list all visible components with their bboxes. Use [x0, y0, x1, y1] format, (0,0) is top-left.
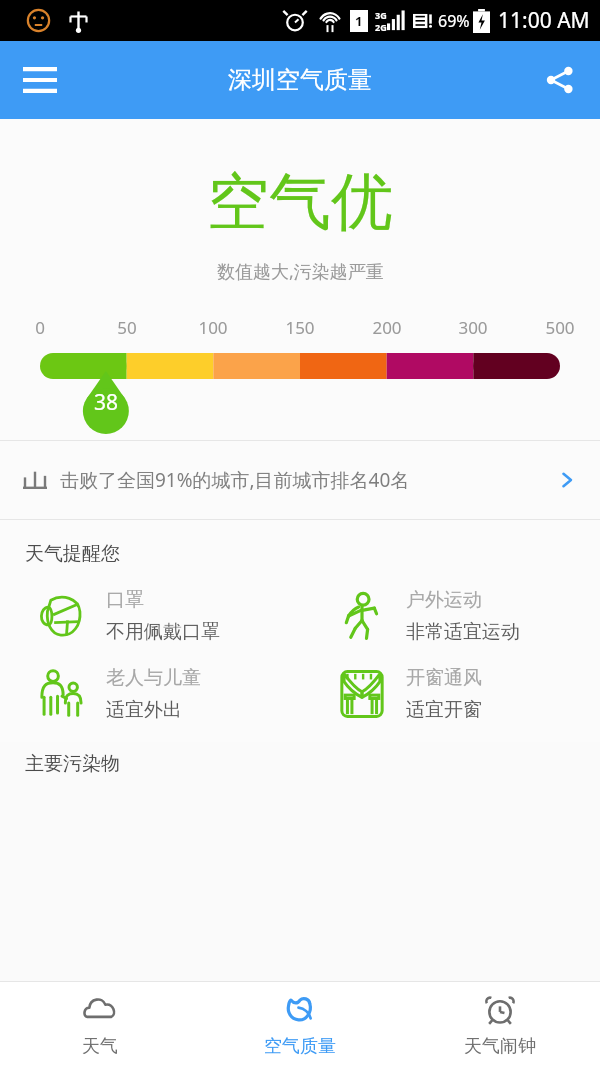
staticText: 数值越大,污染越严重 — [217, 259, 384, 284]
button[interactable]: Menu — [8, 48, 72, 112]
staticText: 主要污染物 — [25, 752, 120, 776]
staticText: 击败了全国91%的城市,目前城市排名40名 — [60, 467, 556, 493]
staticText: 50 — [105, 316, 149, 339]
staticText: 500 — [538, 316, 582, 339]
button[interactable]: 户外运动 — [300, 588, 600, 644]
button[interactable]: 天气 — [0, 982, 200, 1067]
staticText: 38 — [84, 388, 128, 417]
button[interactable]: 开窗通风 — [300, 666, 600, 722]
staticText: 户外运动 — [406, 588, 482, 612]
staticText: 150 — [278, 316, 322, 339]
button[interactable]: 空气质量 — [200, 982, 400, 1067]
button[interactable]: 击败了全国91%的城市,目前城市排名40名 — [0, 441, 600, 519]
staticText: 3G — [375, 9, 387, 21]
staticText: 0 — [18, 316, 62, 339]
button[interactable]: 口罩 — [0, 588, 300, 644]
staticText: 11:00 AM — [498, 6, 590, 35]
staticText: 深圳空气质量 — [228, 65, 372, 95]
staticText: 口罩 — [106, 588, 144, 612]
staticText: 空气优 — [207, 163, 393, 241]
staticText: 开窗通风 — [406, 666, 482, 690]
staticText: 100 — [191, 316, 235, 339]
staticText: 300 — [451, 316, 495, 339]
button[interactable]: 老人与儿童 — [0, 666, 300, 722]
staticText: 适宜外出 — [106, 698, 182, 722]
staticText: 天气提醒您 — [25, 542, 120, 566]
staticText: 空气质量 — [264, 1035, 336, 1058]
staticText: 非常适宜运动 — [406, 620, 520, 644]
button[interactable]: 天气闹钟 — [400, 982, 600, 1067]
staticText: 天气闹钟 — [464, 1035, 536, 1058]
staticText: 不用佩戴口罩 — [106, 620, 220, 644]
staticText: 适宜开窗 — [406, 698, 482, 722]
staticText: 69% — [438, 10, 470, 32]
staticText: 天气 — [82, 1035, 118, 1058]
staticText: 老人与儿童 — [106, 666, 201, 690]
button[interactable]: Share — [530, 50, 590, 110]
staticText: 200 — [365, 316, 409, 339]
staticText: 2G — [375, 21, 387, 33]
staticText: 1 — [355, 12, 363, 30]
